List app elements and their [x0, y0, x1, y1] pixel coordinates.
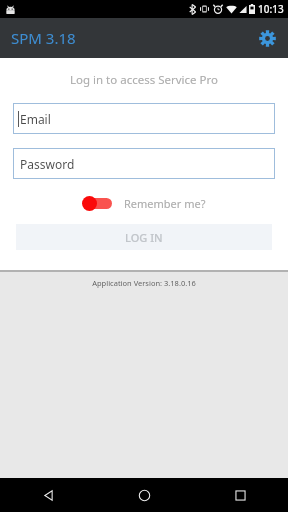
staticText: Password	[20, 156, 75, 172]
button[interactable]: Email	[13, 103, 275, 134]
staticText: 10:13	[258, 2, 284, 16]
staticText: Log in to access Service Pro	[0, 72, 288, 88]
staticText: LOG IN	[125, 230, 163, 245]
button[interactable]: Remember me?	[124, 196, 206, 211]
button[interactable]: Password	[13, 148, 275, 179]
button[interactable]: Settings	[252, 23, 282, 53]
staticText: Email	[20, 111, 51, 127]
staticText: Application Version: 3.18.0.16	[92, 278, 196, 288]
button[interactable]: Recent apps	[192, 478, 288, 512]
button[interactable]: Remember me toggle	[82, 193, 115, 213]
button[interactable]: LOG IN	[16, 224, 272, 250]
button[interactable]: Home	[96, 478, 192, 512]
button[interactable]: Back	[0, 478, 96, 512]
staticText: SPM 3.18	[11, 28, 76, 48]
